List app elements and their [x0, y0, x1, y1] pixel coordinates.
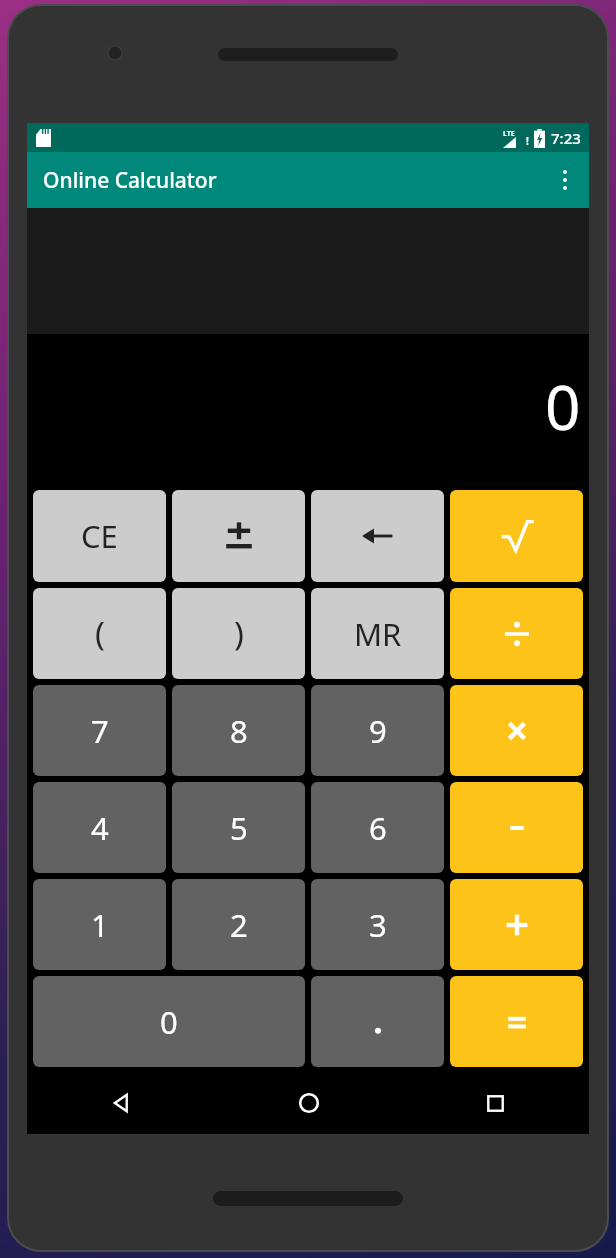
- button[interactable]: 3: [311, 879, 444, 970]
- button[interactable]: Minus: [450, 782, 583, 873]
- staticText: 5: [230, 807, 248, 849]
- staticText: 4: [91, 807, 109, 849]
- staticText: !: [526, 134, 529, 148]
- button[interactable]: 1: [33, 879, 166, 970]
- staticText: 9: [369, 710, 387, 752]
- staticText: CE: [81, 515, 118, 557]
- button[interactable]: Multiply: [450, 685, 583, 776]
- staticText: 0: [160, 1001, 178, 1043]
- button[interactable]: Equals: [450, 976, 583, 1067]
- button[interactable]: CE: [33, 490, 166, 582]
- button[interactable]: 9: [311, 685, 444, 776]
- button[interactable]: (: [33, 588, 166, 679]
- staticText: Online Calculator: [43, 166, 217, 195]
- button[interactable]: Back: [27, 1072, 215, 1134]
- button[interactable]: 4: [33, 782, 166, 873]
- staticText: 6: [369, 807, 387, 849]
- button[interactable]: 7: [33, 685, 166, 776]
- staticText: 8: [230, 710, 248, 752]
- button[interactable]: 6: [311, 782, 444, 873]
- staticText: ): [234, 611, 244, 656]
- button[interactable]: MR: [311, 588, 444, 679]
- button[interactable]: 8: [172, 685, 305, 776]
- staticText: 3: [369, 904, 387, 946]
- button[interactable]: Square root: [450, 490, 583, 582]
- staticText: 0: [545, 364, 581, 448]
- button[interactable]: Divide: [450, 588, 583, 679]
- staticText: 1: [91, 904, 109, 946]
- button[interactable]: Decimal point: [311, 976, 444, 1067]
- button[interactable]: Home: [215, 1072, 402, 1134]
- button[interactable]: Recent apps: [402, 1072, 589, 1134]
- staticText: LTE: [503, 129, 515, 139]
- staticText: (: [95, 611, 105, 656]
- button[interactable]: 5: [172, 782, 305, 873]
- button[interactable]: Plus minus: [172, 490, 305, 582]
- staticText: MR: [354, 613, 402, 655]
- staticText: 7: [91, 710, 109, 752]
- staticText: 7:23: [551, 128, 581, 148]
- button[interactable]: Backspace: [311, 490, 444, 582]
- button[interactable]: ): [172, 588, 305, 679]
- button[interactable]: More options: [541, 156, 589, 204]
- button[interactable]: 0: [33, 976, 305, 1067]
- staticText: 2: [230, 904, 248, 946]
- button[interactable]: Plus: [450, 879, 583, 970]
- button[interactable]: 2: [172, 879, 305, 970]
